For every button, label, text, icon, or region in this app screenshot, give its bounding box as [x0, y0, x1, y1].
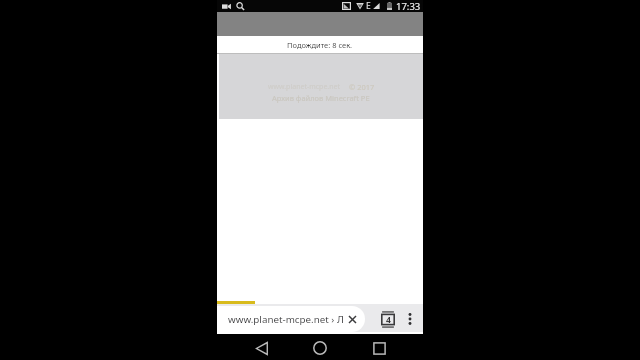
button[interactable]: www.planet-mcpe.net › Л	[217, 306, 365, 332]
button[interactable]: More options	[398, 304, 422, 334]
staticText: Подождите: 8 сек.	[287, 40, 353, 50]
staticText: E	[366, 0, 371, 12]
staticText: www.planet-mcpe.net	[268, 82, 341, 92]
staticText: 4	[386, 314, 391, 326]
other: Stop loading	[349, 316, 356, 323]
button[interactable]: Back	[251, 337, 273, 359]
button[interactable]: Tabs	[374, 304, 402, 334]
staticText: Архив файлов Minecraft PE	[272, 93, 370, 103]
button[interactable]: Recents	[368, 337, 390, 359]
button[interactable]: Home	[309, 337, 331, 359]
staticText: 17:33	[396, 0, 421, 12]
staticText: www.planet-mcpe.net › Л	[228, 313, 344, 326]
staticText: © 2017	[349, 82, 375, 92]
